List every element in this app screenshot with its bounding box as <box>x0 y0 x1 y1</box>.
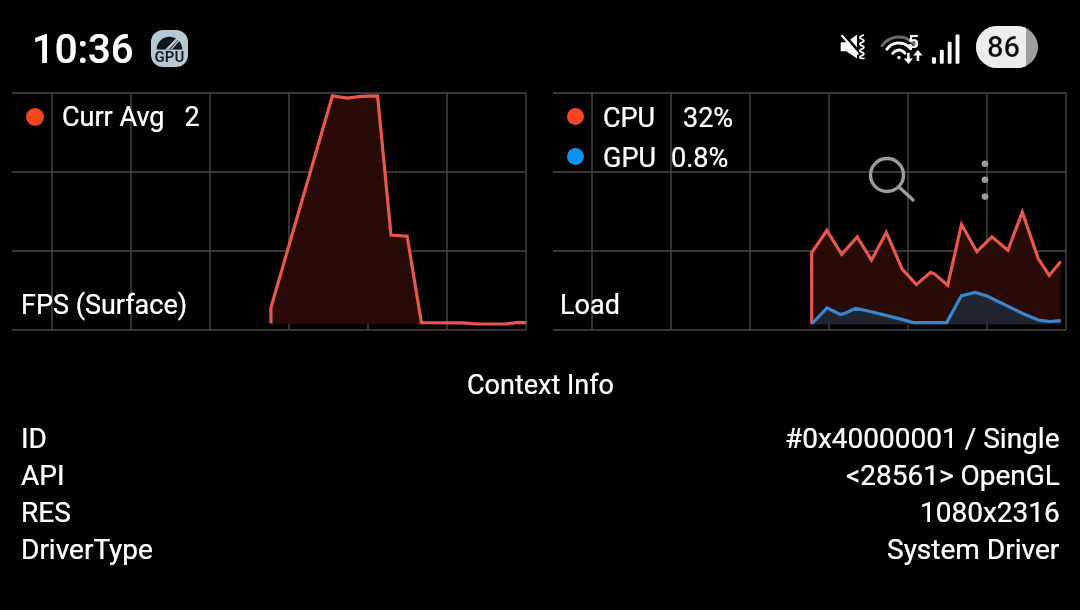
staticText: GPU <box>151 48 188 66</box>
staticText: CPU <box>603 102 656 134</box>
staticText: ID <box>21 422 47 455</box>
staticText: <28561> OpenGL <box>846 459 1060 492</box>
staticText: DriverType <box>21 533 153 566</box>
button[interactable]: Battery 86 percent <box>976 26 1038 68</box>
staticText: #0x40000001 / Single <box>785 422 1060 455</box>
staticText: Context Info <box>467 369 614 401</box>
staticText: GPU <box>603 142 656 174</box>
staticText: 32% <box>683 102 734 134</box>
staticText: 5 <box>908 30 919 52</box>
staticText: API <box>21 459 65 492</box>
button[interactable]: More options <box>966 148 1004 206</box>
staticText: Load <box>560 289 620 321</box>
staticText: System Driver <box>887 533 1060 566</box>
button[interactable]: Search <box>860 148 916 204</box>
staticText: 1080x2316 <box>920 496 1060 529</box>
staticText: FPS (Surface) <box>21 289 188 321</box>
staticText: Curr Avg 2 <box>62 101 200 133</box>
staticText: 86 <box>987 30 1020 64</box>
staticText: 10:36 <box>32 26 134 73</box>
staticText: 0.8% <box>671 142 729 174</box>
button[interactable]: GPU monitor <box>151 30 188 67</box>
staticText: RES <box>21 496 71 529</box>
